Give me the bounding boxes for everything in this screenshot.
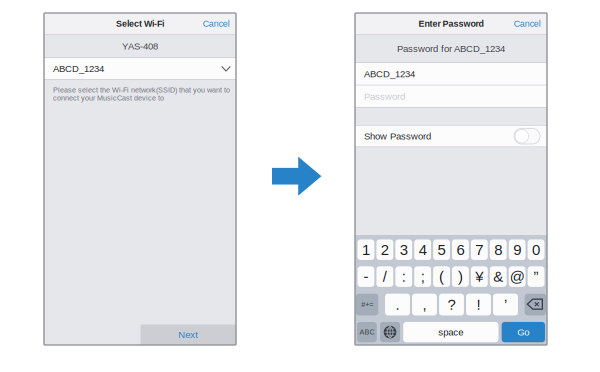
staticText: YAS-408 <box>122 41 158 52</box>
button[interactable]: 1 <box>357 239 374 260</box>
staticText: 5 <box>437 241 445 258</box>
button[interactable]: @ <box>509 266 526 287</box>
staticText: ; <box>421 268 425 285</box>
button[interactable]: ¥ <box>471 266 488 287</box>
button[interactable]: , <box>412 294 437 315</box>
staticText: ? <box>447 296 455 313</box>
button[interactable]: 2 <box>376 239 393 260</box>
staticText: ( <box>439 268 444 285</box>
staticText: 9 <box>513 241 521 258</box>
button[interactable]: space <box>403 322 498 342</box>
staticText: ! <box>476 296 480 313</box>
staticText: ” <box>533 268 538 285</box>
button[interactable]: ( <box>433 266 450 287</box>
button[interactable]: Show Password <box>355 126 547 147</box>
button[interactable]: ; <box>414 266 431 287</box>
staticText: Password for ABCD_1234 <box>397 43 505 54</box>
staticText: 3 <box>400 241 408 258</box>
button[interactable]: #+= <box>356 294 378 315</box>
staticText: 1 <box>362 241 370 258</box>
button[interactable]: 3 <box>395 239 412 260</box>
staticText: space <box>438 327 463 337</box>
staticText: Cancel <box>203 19 230 29</box>
button[interactable]: 9 <box>509 239 526 260</box>
staticText: Enter Password <box>418 19 483 29</box>
staticText: ABCD_1234 <box>53 63 104 74</box>
staticText: @ <box>510 268 525 285</box>
button[interactable]: ) <box>452 266 469 287</box>
staticText: Next <box>178 329 198 340</box>
button[interactable]: ! <box>466 294 491 315</box>
button[interactable]: ’ <box>493 294 518 315</box>
button[interactable]: Cancel <box>514 13 547 34</box>
staticText: 2 <box>381 241 389 258</box>
staticText: , <box>422 296 426 313</box>
button[interactable]: ABC <box>357 322 377 342</box>
staticText: Show Password <box>364 131 431 141</box>
button[interactable]: Go <box>502 322 545 342</box>
staticText: / <box>383 268 387 285</box>
staticText: ABCD_1234 <box>364 69 415 79</box>
button[interactable]: Next <box>140 324 236 345</box>
staticText: #+= <box>361 300 373 308</box>
staticText: 7 <box>475 241 483 258</box>
button[interactable]: - <box>357 266 374 287</box>
button[interactable]: 4 <box>414 239 431 260</box>
button[interactable]: & <box>490 266 507 287</box>
button[interactable]: 0 <box>528 239 544 260</box>
staticText: 0 <box>532 241 540 258</box>
button[interactable]: Delete <box>525 294 546 315</box>
staticText: 6 <box>456 241 464 258</box>
staticText: Please select the Wi-Fi network(SSID) th… <box>53 86 230 102</box>
button[interactable]: ” <box>528 266 544 287</box>
button[interactable]: ABCD_1234 <box>44 58 236 79</box>
button[interactable]: Cancel <box>203 13 236 34</box>
staticText: 8 <box>494 241 502 258</box>
staticText: - <box>363 268 368 285</box>
button[interactable]: / <box>376 266 393 287</box>
staticText: Go <box>517 327 529 337</box>
button[interactable]: 5 <box>433 239 450 260</box>
button[interactable]: Next keyboard <box>380 322 400 342</box>
button[interactable]: . <box>385 294 410 315</box>
button[interactable]: 7 <box>471 239 488 260</box>
button[interactable]: 8 <box>490 239 507 260</box>
button[interactable]: ? <box>439 294 464 315</box>
staticText: . <box>395 296 399 313</box>
staticText: ’ <box>504 296 507 313</box>
staticText: : <box>402 268 406 285</box>
staticText: ) <box>458 268 463 285</box>
staticText: & <box>493 268 503 285</box>
staticText: Cancel <box>514 19 541 29</box>
button[interactable]: : <box>395 266 412 287</box>
staticText: ABC <box>359 328 374 336</box>
button[interactable]: 6 <box>452 239 469 260</box>
staticText: 4 <box>419 241 427 258</box>
staticText: ¥ <box>475 268 483 285</box>
staticText: Password <box>364 91 405 102</box>
staticText: Select Wi-Fi <box>116 19 164 29</box>
